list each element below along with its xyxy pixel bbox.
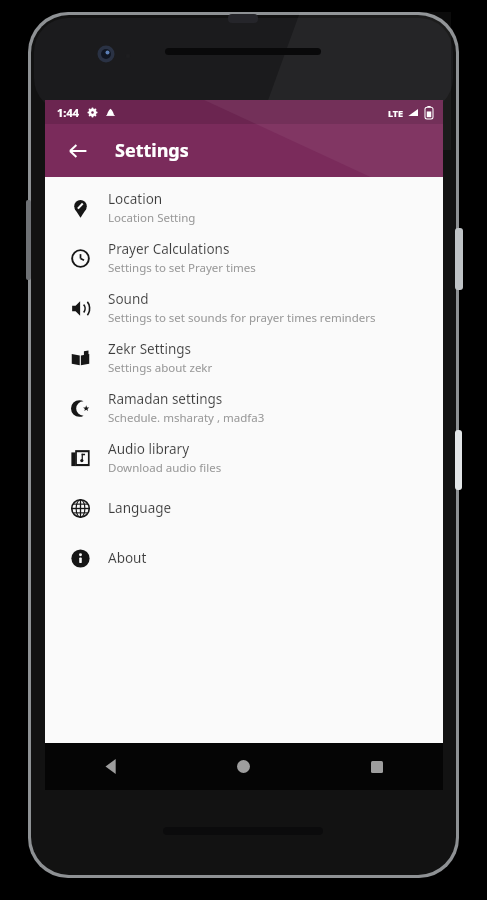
staticText: Download audio files xyxy=(108,460,222,476)
button[interactable]: Audio library xyxy=(45,433,443,483)
staticText: Location Setting xyxy=(108,210,196,226)
staticText: Prayer Calculations xyxy=(108,240,230,258)
button[interactable]: Recents xyxy=(310,743,443,790)
button[interactable]: Prayer Calculations xyxy=(45,233,443,283)
staticText: About xyxy=(108,549,147,567)
staticText: Settings about zekr xyxy=(108,360,213,376)
staticText: Language xyxy=(108,499,172,517)
button[interactable]: Sound xyxy=(45,283,443,333)
staticText: 1:44 xyxy=(57,105,79,120)
button[interactable]: Zekr Settings xyxy=(45,333,443,383)
button[interactable]: Location xyxy=(45,183,443,233)
button[interactable]: About xyxy=(45,533,443,583)
staticText: LTE xyxy=(388,107,404,119)
button[interactable]: Language xyxy=(45,483,443,533)
staticText: Settings to set sounds for prayer times … xyxy=(108,310,376,326)
staticText: Zekr Settings xyxy=(108,340,191,358)
button[interactable]: Back xyxy=(45,743,177,790)
staticText: Schedule. msharaty , madfa3 xyxy=(108,410,265,426)
staticText: Audio library xyxy=(108,440,190,458)
staticText: Settings to set Prayer times xyxy=(108,260,256,276)
button[interactable]: Home xyxy=(177,743,310,790)
button[interactable]: Ramadan settings xyxy=(45,383,443,433)
staticText: Sound xyxy=(108,290,149,308)
button[interactable]: Back xyxy=(59,132,97,170)
staticText: Settings xyxy=(115,138,189,163)
staticText: Location xyxy=(108,190,163,208)
staticText: Ramadan settings xyxy=(108,390,223,408)
